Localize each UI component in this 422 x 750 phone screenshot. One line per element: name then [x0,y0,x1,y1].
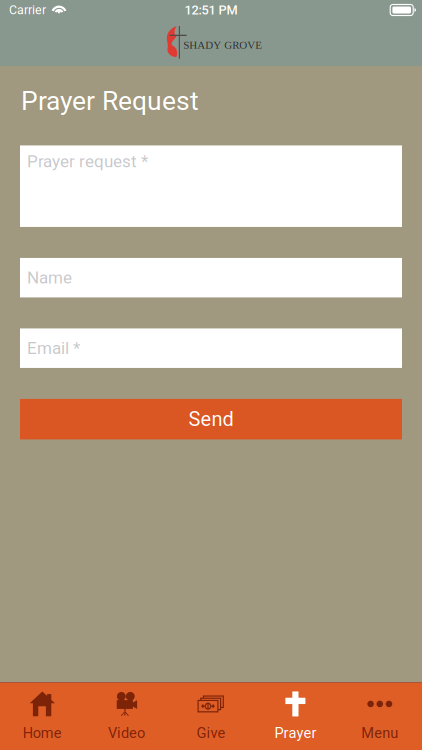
staticText: Email * [27,338,80,358]
button[interactable]: Home [0,682,84,750]
staticText: Prayer request * [27,151,148,171]
staticText: Home [23,724,62,741]
button[interactable]: Menu [338,682,422,750]
button[interactable]: Send [20,399,402,439]
button[interactable]: Prayer request * [20,145,402,227]
button[interactable]: Name [20,258,402,297]
button[interactable]: Video [84,682,169,750]
staticText: Name [27,268,72,288]
staticText: Carrier [9,3,46,17]
staticText: 12:51 PM [184,2,237,17]
staticText: Menu [361,724,398,741]
button[interactable]: Prayer [253,682,338,750]
staticText: Video [108,724,145,741]
button[interactable]: Give [169,682,253,750]
staticText: Send [188,407,233,431]
staticText: Give [196,724,225,741]
staticText: SHADY GROVE [183,39,262,51]
staticText: Prayer [274,724,316,741]
staticText: Prayer Request [21,85,199,116]
button[interactable]: Email * [20,328,402,368]
